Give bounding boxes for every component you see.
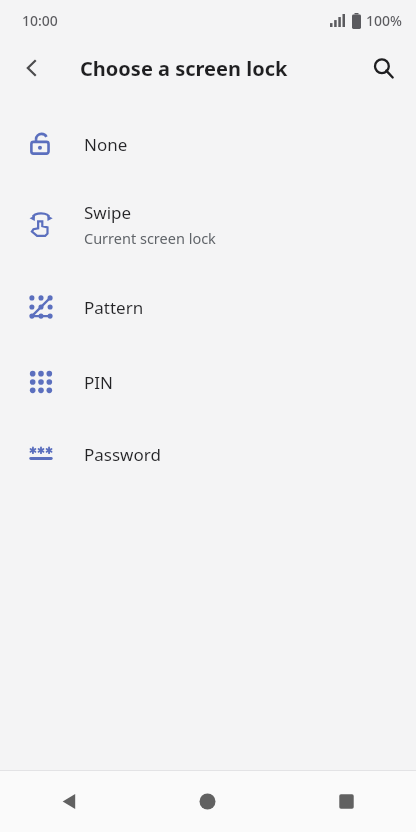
staticText: None — [84, 133, 128, 156]
staticText: Current screen lock — [84, 228, 216, 248]
staticText: Password — [84, 443, 161, 466]
button[interactable]: None — [0, 108, 416, 180]
button[interactable]: Pattern — [0, 268, 416, 346]
staticText: Swipe — [84, 201, 132, 224]
button[interactable]: Swipe — [0, 180, 416, 268]
staticText: PIN — [84, 371, 113, 394]
staticText: 10:00 — [22, 11, 58, 30]
button[interactable]: Search — [360, 45, 406, 91]
staticText: Pattern — [84, 296, 144, 319]
button[interactable]: Back — [0, 771, 138, 832]
button[interactable]: Recent apps — [277, 771, 416, 832]
button[interactable]: Home — [138, 771, 277, 832]
staticText: 100% — [366, 11, 402, 30]
button[interactable]: Password — [0, 418, 416, 490]
button[interactable]: Navigate up — [9, 45, 55, 91]
button[interactable]: PIN — [0, 346, 416, 418]
staticText: Choose a screen lock — [80, 55, 288, 82]
